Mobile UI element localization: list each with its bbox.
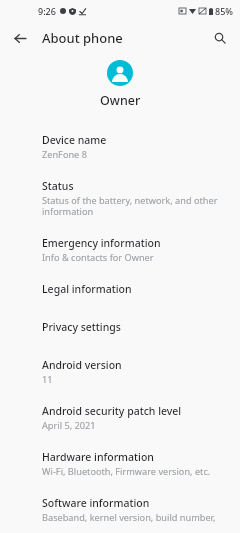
staticText: Privacy settings — [42, 320, 121, 334]
staticText: Info & contacts for Owner — [42, 251, 154, 264]
staticText: Hardware information — [42, 450, 154, 464]
staticText: Android version — [42, 358, 122, 372]
staticText: April 5, 2021 — [42, 419, 96, 432]
button[interactable]: Hardware information — [0, 443, 240, 485]
staticText: 11 — [42, 373, 53, 386]
staticText: Android security patch level — [42, 404, 182, 418]
button[interactable]: Back — [6, 24, 34, 52]
button[interactable]: Legal information — [0, 275, 240, 303]
staticText: ZenFone 8 — [42, 148, 87, 161]
button[interactable]: Emergency information — [0, 229, 240, 271]
staticText: Software information — [42, 496, 150, 510]
button[interactable]: Privacy settings — [0, 313, 240, 341]
button[interactable]: Software information — [0, 489, 240, 533]
staticText: Emergency information — [42, 236, 161, 250]
staticText: Wi-Fi, Bluetooth, Firmware version, etc. — [42, 465, 211, 478]
staticText: Device name — [42, 133, 107, 147]
staticText: 85% — [215, 5, 233, 17]
button[interactable]: Device name — [0, 126, 240, 168]
staticText: About phone — [42, 29, 123, 47]
staticText: Baseband, kernel version, build number, … — [42, 511, 226, 526]
staticText: Owner — [100, 92, 141, 109]
staticText: Status — [42, 179, 74, 193]
button[interactable]: Android security patch level — [0, 397, 240, 439]
staticText: Status of the battery, network, and othe… — [42, 194, 218, 218]
button[interactable]: Status — [0, 172, 240, 225]
button[interactable]: Search — [206, 24, 234, 52]
staticText: Legal information — [42, 282, 132, 296]
button[interactable]: Android version — [0, 351, 240, 393]
staticText: 9:26 — [38, 5, 56, 17]
